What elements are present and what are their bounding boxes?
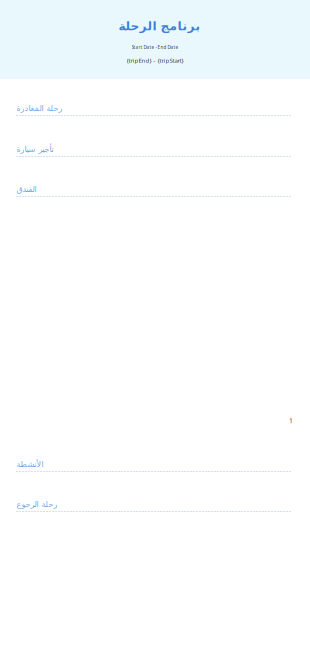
- staticText: رحلة الرجوع: [16, 500, 57, 509]
- staticText: الأنشطة: [16, 460, 43, 469]
- staticText: {tripEnd} - {tripStart}: [126, 56, 183, 64]
- button[interactable]: الأنشطة: [16, 445, 292, 472]
- staticText: رحلة المغادرة: [16, 104, 62, 113]
- staticText: الفندق: [16, 185, 36, 194]
- button[interactable]: الفندق: [16, 170, 292, 197]
- staticText: برنامج الرحلة: [118, 19, 200, 33]
- button[interactable]: رحلة الرجوع: [16, 485, 292, 512]
- staticText: 1: [289, 416, 293, 425]
- staticText: Start Date - End Date: [131, 44, 178, 50]
- button[interactable]: تأجير سيارة: [16, 130, 292, 157]
- button[interactable]: رحلة المغادرة: [16, 89, 292, 116]
- staticText: تأجير سيارة: [16, 145, 53, 154]
